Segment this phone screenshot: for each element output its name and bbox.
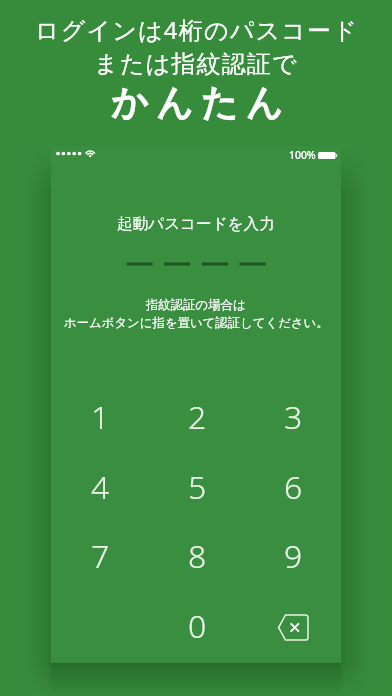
button[interactable]: 1 [66, 383, 134, 451]
button[interactable]: Delete [259, 593, 327, 661]
staticText: または指紋認証で [94, 49, 298, 79]
staticText: ホームボタンに指を置いて認証してください。 [64, 315, 329, 331]
staticText: 100% [289, 148, 316, 162]
staticText: ログインは4桁のパスコード [35, 13, 358, 46]
staticText: 9 [284, 534, 303, 578]
staticText: 1 [91, 395, 110, 439]
staticText: 起動パスコードを入力 [117, 214, 275, 234]
button[interactable]: 6 [259, 453, 327, 521]
staticText: 5 [188, 465, 207, 509]
button[interactable]: 0 [163, 592, 231, 660]
button[interactable]: 9 [259, 522, 327, 590]
button[interactable]: 7 [66, 522, 134, 590]
staticText: 指紋認証の場合は [146, 297, 246, 313]
staticText: 3 [284, 395, 303, 439]
staticText: かんたん [111, 80, 291, 126]
button[interactable]: 3 [259, 383, 327, 451]
button[interactable]: 5 [163, 453, 231, 521]
staticText: 4 [91, 465, 110, 509]
button[interactable]: 2 [163, 383, 231, 451]
staticText: 7 [91, 534, 110, 578]
staticText: 8 [188, 534, 207, 578]
staticText: 6 [284, 465, 303, 509]
button[interactable]: 8 [163, 522, 231, 590]
staticText: 2 [188, 395, 207, 439]
button[interactable]: 4 [66, 453, 134, 521]
staticText: 0 [188, 604, 207, 648]
